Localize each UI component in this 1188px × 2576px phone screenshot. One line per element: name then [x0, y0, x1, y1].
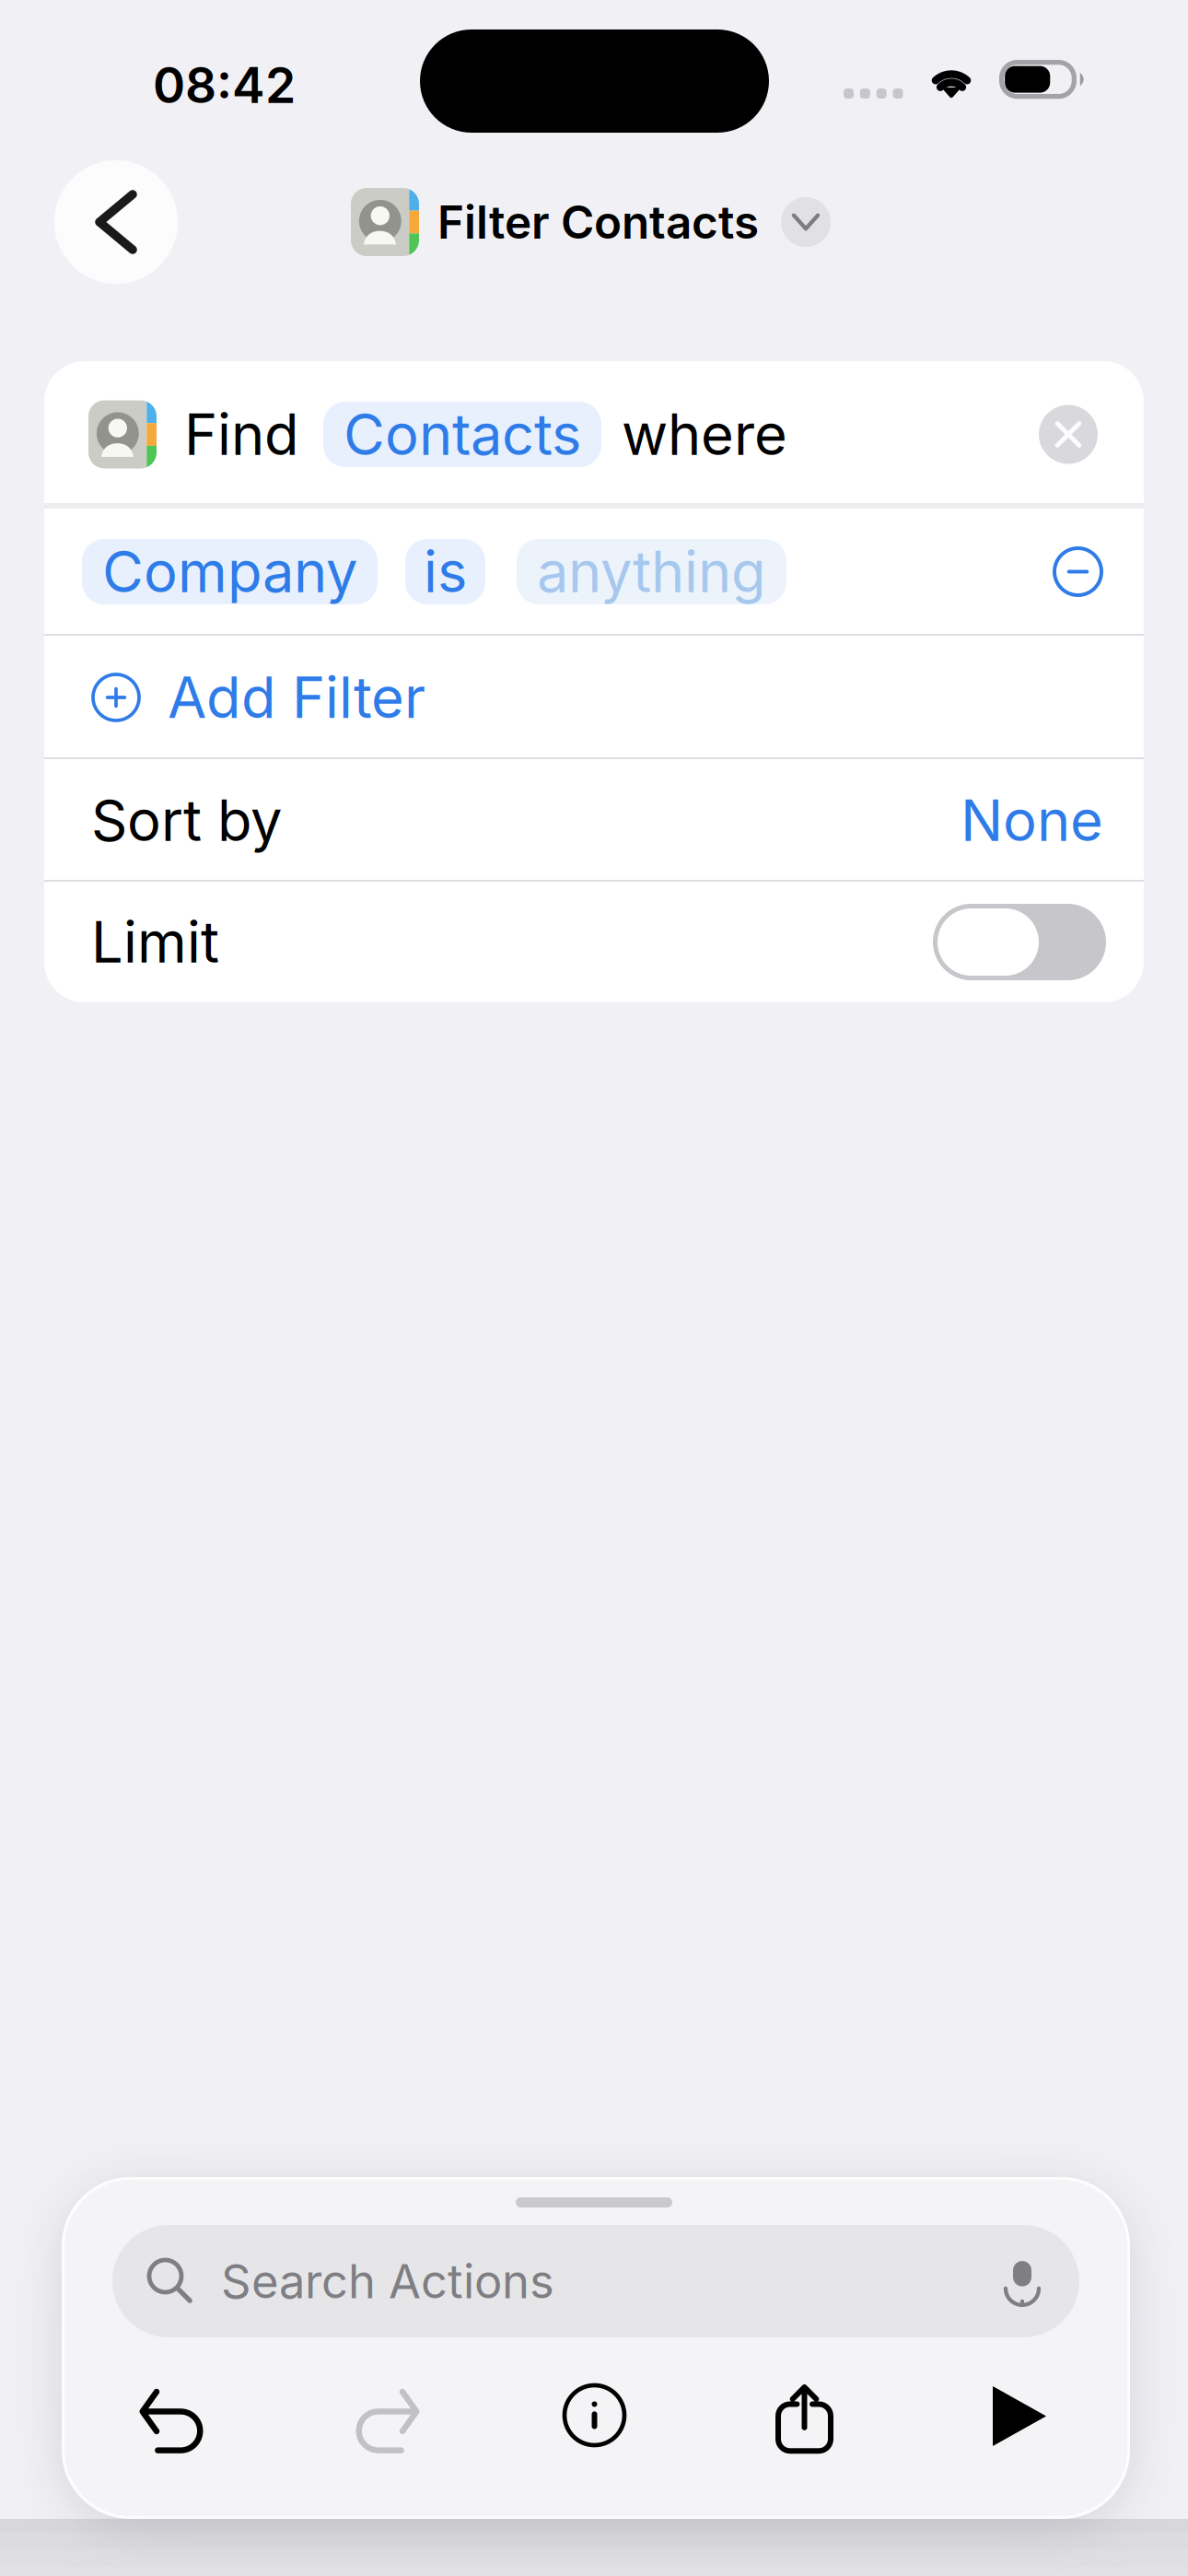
staticText: None: [961, 786, 1103, 855]
button[interactable]: Remove action: [1039, 405, 1098, 464]
staticText: anything: [537, 537, 766, 606]
button[interactable]: Back: [54, 160, 178, 284]
button[interactable]: Run: [993, 2386, 1046, 2446]
button[interactable]: Remove filter: [1054, 548, 1101, 595]
staticText: 08:42: [153, 55, 296, 115]
staticText: Contacts: [344, 400, 581, 469]
button[interactable]: Details: [565, 2385, 624, 2445]
button[interactable]: Redo: [355, 2390, 418, 2453]
staticText: where: [622, 400, 787, 469]
button[interactable]: Limit: [933, 904, 1106, 980]
staticText: Add Filter: [168, 663, 425, 732]
button[interactable]: Undo: [141, 2390, 204, 2453]
button[interactable]: Share: [778, 2385, 831, 2451]
staticText: Company: [102, 537, 357, 606]
staticText: Find: [184, 400, 299, 469]
staticText: Sort by: [91, 786, 282, 855]
staticText: Filter Contacts: [437, 195, 759, 250]
button[interactable]: Search Actions: [112, 2225, 1079, 2337]
staticText: Search Actions: [221, 2253, 554, 2309]
staticText: is: [424, 537, 467, 606]
staticText: Limit: [91, 908, 219, 976]
button[interactable]: Add Filter: [44, 636, 1144, 759]
button[interactable]: Sort by: [44, 759, 1144, 882]
